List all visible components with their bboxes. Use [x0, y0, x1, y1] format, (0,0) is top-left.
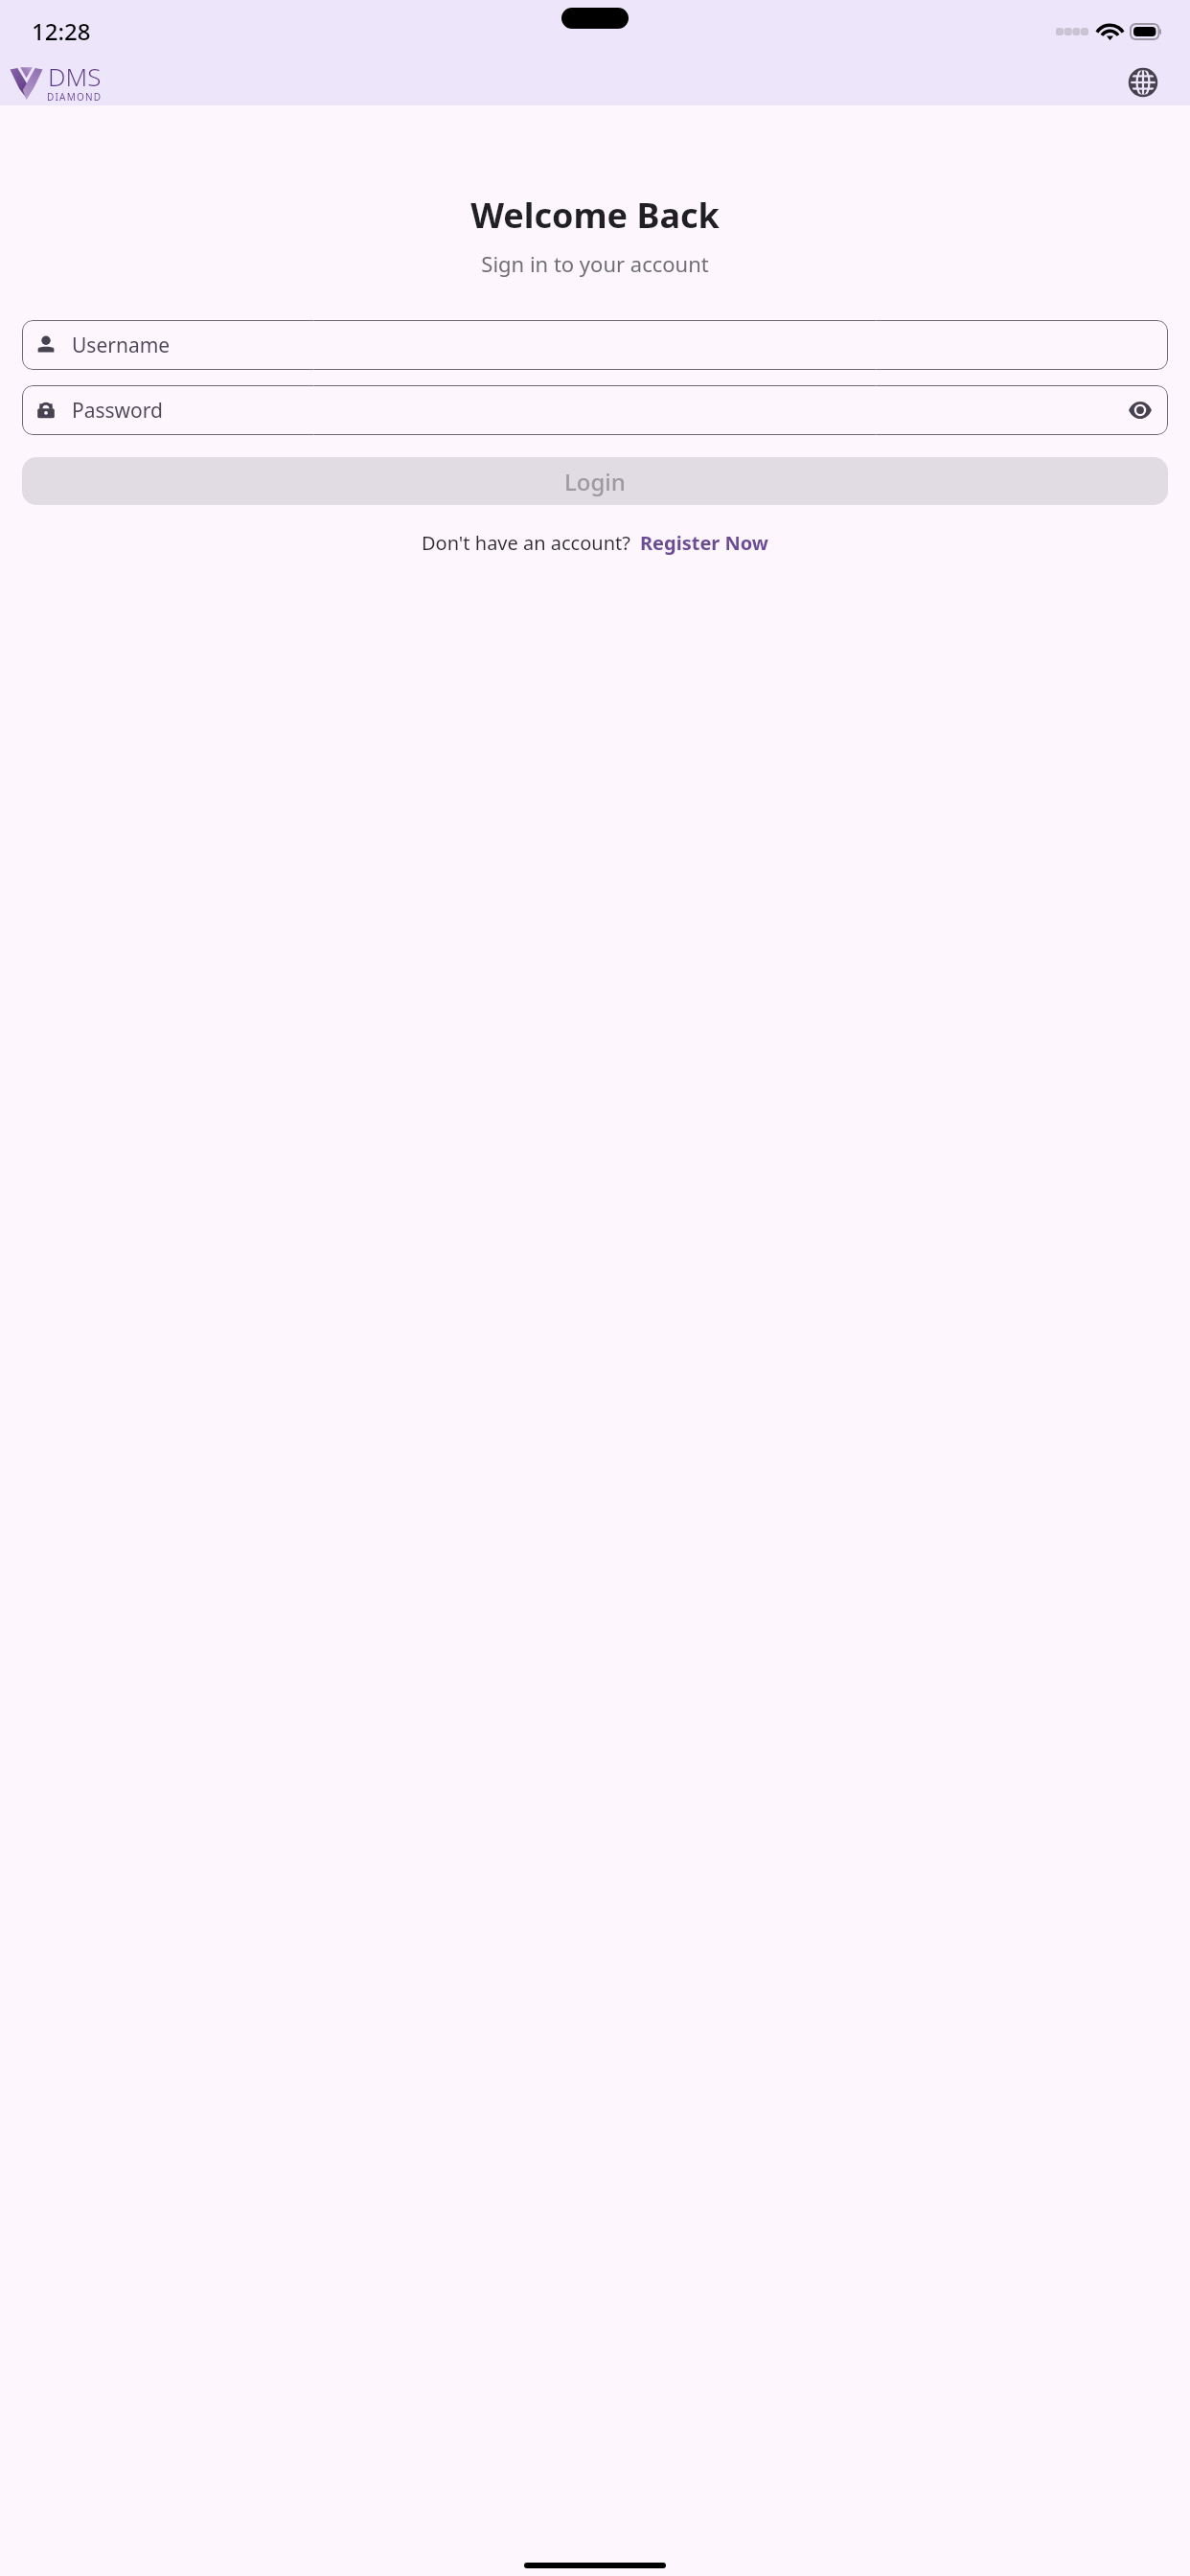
- staticText: Don't have an account?: [422, 530, 630, 556]
- button[interactable]: Change language: [1127, 66, 1159, 99]
- button[interactable]: Username: [22, 320, 1168, 370]
- staticText: DIAMOND: [47, 90, 103, 103]
- button[interactable]: Password: [22, 385, 1168, 435]
- staticText: Welcome Back: [470, 192, 720, 239]
- staticText: Username: [72, 332, 1155, 359]
- staticText: 12:28: [32, 15, 91, 47]
- button[interactable]: Show password: [1126, 396, 1155, 425]
- staticText: Password: [72, 397, 1126, 425]
- staticText: Register Now: [640, 530, 768, 556]
- button[interactable]: Register Now: [640, 530, 768, 556]
- button[interactable]: Login: [22, 457, 1168, 505]
- staticText: DMS: [48, 59, 102, 93]
- staticText: Login: [564, 466, 626, 497]
- button[interactable]: DMS: [9, 59, 103, 105]
- staticText: Sign in to your account: [481, 249, 709, 278]
